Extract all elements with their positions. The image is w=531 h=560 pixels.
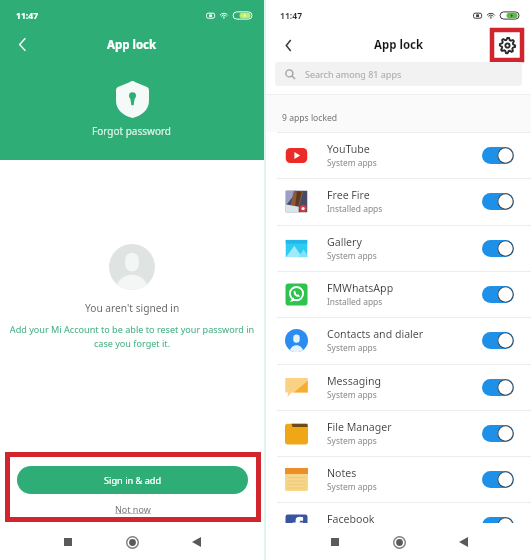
button[interactable]: Gallery bbox=[266, 225, 531, 271]
staticText: Sign in & add bbox=[104, 474, 162, 487]
staticText: System apps bbox=[327, 481, 377, 492]
staticText: FMWhatsApp bbox=[327, 281, 394, 295]
staticText: App lock bbox=[374, 37, 424, 53]
button[interactable]: Lock Free Fire bbox=[482, 193, 514, 210]
button[interactable]: Lock Messaging bbox=[482, 379, 514, 396]
button[interactable]: Not now bbox=[111, 503, 155, 515]
button[interactable]: Lock FMWhatsApp bbox=[482, 286, 514, 303]
staticText: 9 apps locked bbox=[282, 112, 338, 124]
button[interactable]: Lock Notes bbox=[482, 471, 514, 488]
staticText: Search among 81 apps bbox=[305, 68, 402, 80]
staticText: 11:47 bbox=[16, 10, 39, 22]
button[interactable]: Lock File Manager bbox=[482, 425, 514, 442]
staticText: System apps bbox=[327, 342, 377, 353]
staticText: Add your Mi Account to be able to reset … bbox=[4, 323, 260, 350]
staticText: Contacts and dialer bbox=[327, 327, 424, 341]
button[interactable]: FMWhatsApp bbox=[266, 271, 531, 317]
staticText: Not now bbox=[115, 503, 151, 515]
staticText: System apps bbox=[327, 250, 377, 261]
staticText: Free Fire bbox=[327, 188, 370, 202]
staticText: Forgot password bbox=[92, 124, 172, 138]
button[interactable]: File Manager bbox=[266, 410, 531, 456]
button[interactable]: Free Fire bbox=[266, 178, 531, 224]
button[interactable]: Settings bbox=[490, 28, 524, 62]
button[interactable]: Home bbox=[381, 527, 417, 557]
staticText: Installed apps bbox=[327, 203, 383, 214]
staticText: You aren't signed in bbox=[85, 301, 180, 315]
staticText: System apps bbox=[327, 435, 377, 446]
staticText: Messaging bbox=[327, 374, 381, 388]
button[interactable]: Recents bbox=[317, 527, 353, 557]
staticText: Gallery bbox=[327, 235, 362, 249]
staticText: Installed apps bbox=[327, 296, 383, 307]
button[interactable]: YouTube bbox=[266, 132, 531, 178]
button[interactable]: Forgot password bbox=[86, 123, 178, 139]
button[interactable]: Notes bbox=[266, 456, 531, 502]
button[interactable]: Lock YouTube bbox=[482, 147, 514, 164]
button[interactable]: Back bbox=[270, 27, 306, 63]
staticText: YouTube bbox=[327, 142, 370, 156]
button[interactable]: Home bbox=[114, 527, 150, 557]
button[interactable]: Lock Gallery bbox=[482, 240, 514, 257]
staticText: System apps bbox=[327, 389, 377, 400]
button[interactable]: Recents bbox=[50, 527, 86, 557]
button[interactable]: Lock Facebook bbox=[482, 517, 514, 534]
button[interactable]: Facebook bbox=[266, 502, 531, 548]
staticText: App lock bbox=[107, 37, 157, 53]
staticText: File Manager bbox=[327, 420, 392, 434]
button[interactable]: Lock Contacts and dialer bbox=[482, 332, 514, 349]
button[interactable]: Back bbox=[445, 527, 481, 557]
button[interactable]: Back bbox=[3, 25, 41, 63]
staticText: 11:47 bbox=[280, 10, 303, 22]
button[interactable]: Messaging bbox=[266, 364, 531, 410]
button[interactable]: Search among 81 apps bbox=[275, 62, 522, 86]
staticText: Facebook bbox=[327, 512, 375, 526]
button[interactable]: Contacts and dialer bbox=[266, 317, 531, 363]
button[interactable]: Sign in & add bbox=[17, 466, 248, 494]
staticText: Notes bbox=[327, 466, 357, 480]
button[interactable]: Back bbox=[178, 527, 214, 557]
staticText: System apps bbox=[327, 157, 377, 168]
